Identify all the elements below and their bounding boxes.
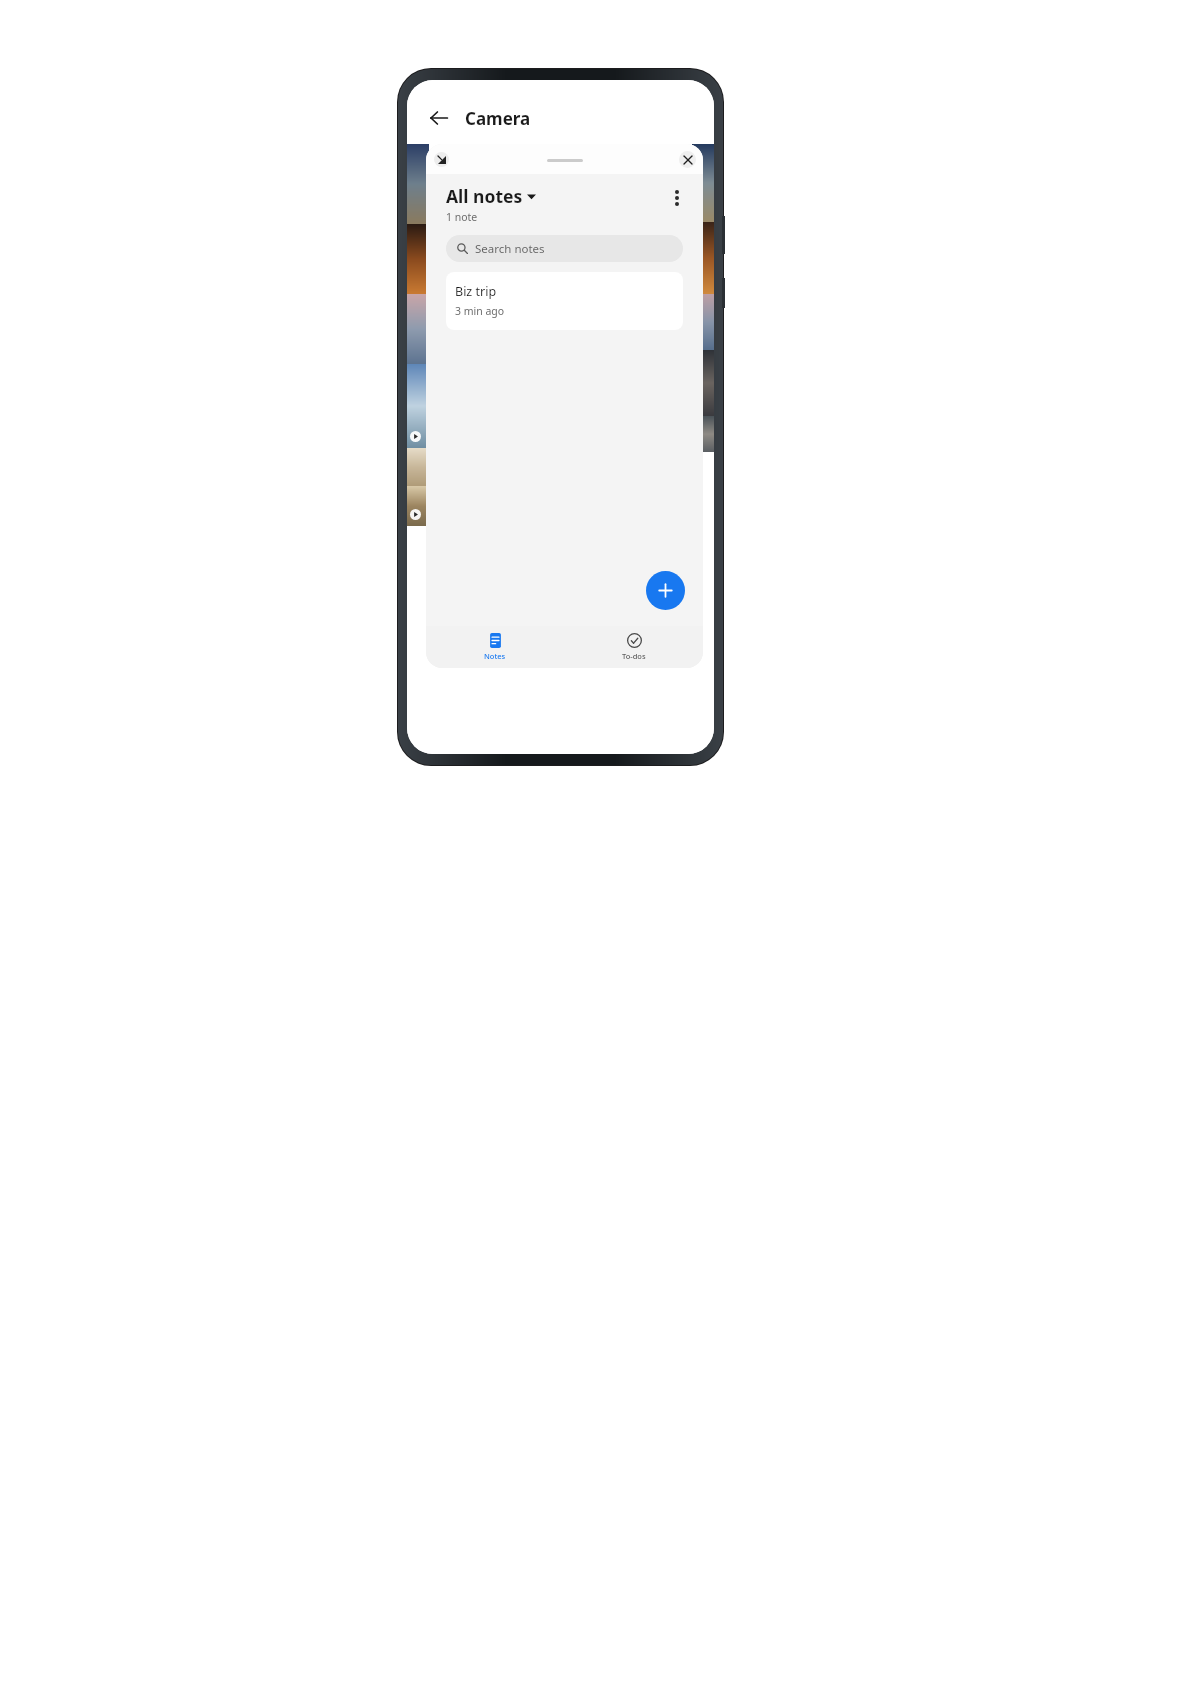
button[interactable]: Resize window <box>434 152 449 167</box>
button[interactable]: To-dos <box>610 630 658 664</box>
staticText: 3 min ago <box>455 304 505 318</box>
staticText: Camera <box>465 107 531 130</box>
button[interactable]: Back <box>423 102 455 134</box>
button[interactable]: Close <box>679 151 696 168</box>
staticText: To-dos <box>622 651 646 661</box>
button[interactable]: Search notes <box>446 235 683 262</box>
staticText: All notes <box>446 184 523 208</box>
staticText: Notes <box>484 651 506 661</box>
button[interactable]: More options <box>663 184 691 212</box>
button[interactable]: All notes <box>446 184 536 208</box>
button[interactable]: New note <box>646 571 685 610</box>
staticText: 1 note <box>446 210 478 224</box>
button[interactable]: Biz trip <box>446 272 683 330</box>
staticText: Biz trip <box>455 283 497 300</box>
staticText: Search notes <box>475 241 545 257</box>
button[interactable]: Notes <box>472 630 518 664</box>
button[interactable]: Drag handle <box>547 159 583 162</box>
